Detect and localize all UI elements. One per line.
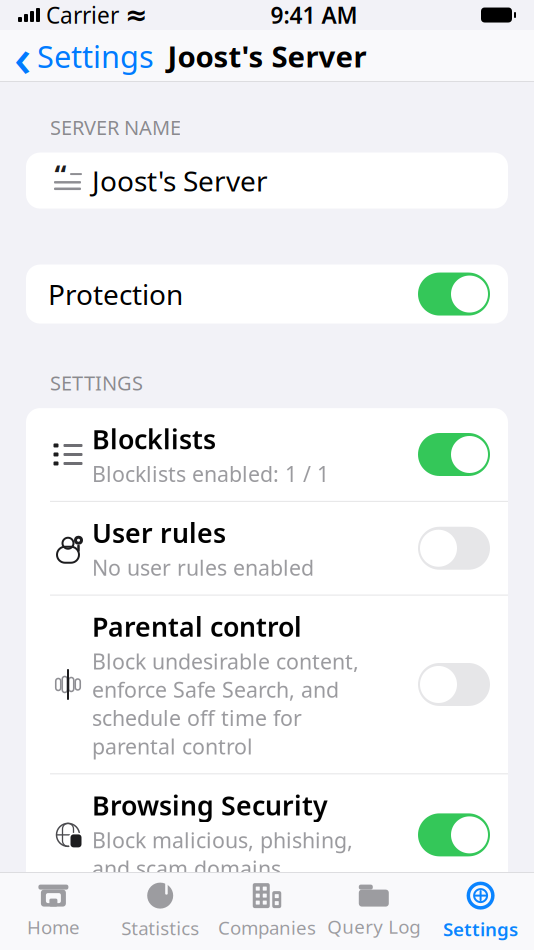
- button[interactable]: Blocklists: [26, 408, 508, 501]
- staticText: Blocklists enabled: 1 / 1: [92, 459, 329, 488]
- staticText: Query Log: [327, 914, 420, 939]
- staticText: Companies: [218, 915, 316, 940]
- staticText: SERVER NAME: [50, 114, 181, 141]
- staticText: Joost's Server: [167, 36, 366, 75]
- staticText: Settings: [37, 36, 154, 76]
- button[interactable]: Home: [0, 876, 107, 947]
- button[interactable]: Companies: [214, 875, 320, 948]
- staticText: Block undesirable content, enforce Safe …: [92, 647, 359, 760]
- button[interactable]: ‹: [0, 17, 154, 95]
- staticText: “: [54, 156, 66, 192]
- staticText: Protection: [48, 275, 183, 313]
- staticText: Carrier: [46, 0, 119, 30]
- staticText: Settings: [443, 917, 518, 941]
- staticText: Home: [27, 915, 80, 939]
- button[interactable]: Protection: [26, 265, 508, 324]
- staticText: ‹: [14, 21, 31, 91]
- staticText: SETTINGS: [50, 370, 143, 396]
- button[interactable]: Parental control: [26, 596, 508, 773]
- staticText: ≈: [125, 0, 147, 30]
- staticText: User rules: [92, 515, 226, 550]
- button[interactable]: Browsing Security: [26, 774, 508, 895]
- button[interactable]: “: [26, 153, 508, 209]
- staticText: 9:41 AM: [270, 0, 357, 30]
- button[interactable]: Statistics: [107, 875, 214, 948]
- staticText: Blocklists: [92, 421, 216, 456]
- button[interactable]: User rules: [26, 502, 508, 595]
- button[interactable]: Settings: [427, 874, 534, 949]
- staticText: Browsing Security: [92, 787, 328, 823]
- staticText: Block malicious, phishing, and scam doma…: [92, 826, 353, 882]
- button[interactable]: Query Log: [320, 876, 427, 947]
- staticText: Parental control: [92, 609, 302, 644]
- staticText: No user rules enabled: [92, 553, 314, 582]
- staticText: Statistics: [121, 916, 199, 940]
- staticText: Joost's Server: [92, 162, 268, 199]
